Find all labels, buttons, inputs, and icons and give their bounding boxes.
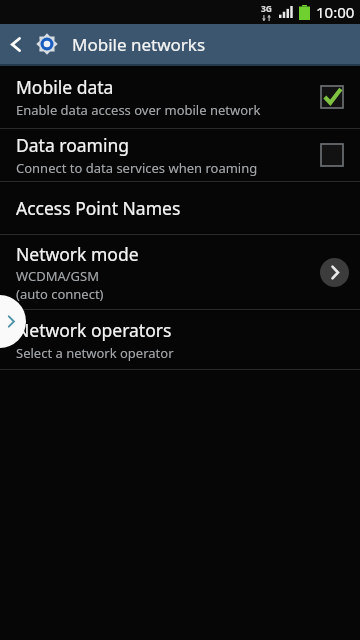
staticText: Access Point Names <box>16 196 181 220</box>
button[interactable]: Mobile data <box>0 66 360 128</box>
staticText: Connect to data services when roaming <box>16 159 258 177</box>
staticText: Mobile networks <box>72 33 206 56</box>
staticText: WCDMA/GSM <box>16 267 99 285</box>
button[interactable]: Access Point Names <box>0 182 360 234</box>
staticText: (auto connect) <box>16 285 104 303</box>
staticText: Select a network operator <box>16 344 174 362</box>
staticText: Network mode <box>16 242 139 266</box>
button[interactable]: Network operators <box>0 310 360 369</box>
staticText: Data roaming <box>16 133 130 157</box>
staticText: Network operators <box>16 318 172 342</box>
button[interactable]: Open navigation drawer <box>0 295 26 348</box>
staticText: Enable data access over mobile network <box>16 101 261 119</box>
button[interactable]: Data roaming <box>0 129 360 181</box>
staticText: Mobile data <box>16 75 114 99</box>
button[interactable]: Open network mode <box>319 257 349 287</box>
staticText: 3G <box>261 3 273 15</box>
button[interactable]: Back <box>0 24 33 64</box>
button[interactable]: Network mode <box>0 235 360 309</box>
button[interactable]: Unchecked <box>318 141 346 169</box>
button[interactable]: Checked <box>318 83 346 111</box>
staticText: 10:00 <box>316 2 355 22</box>
